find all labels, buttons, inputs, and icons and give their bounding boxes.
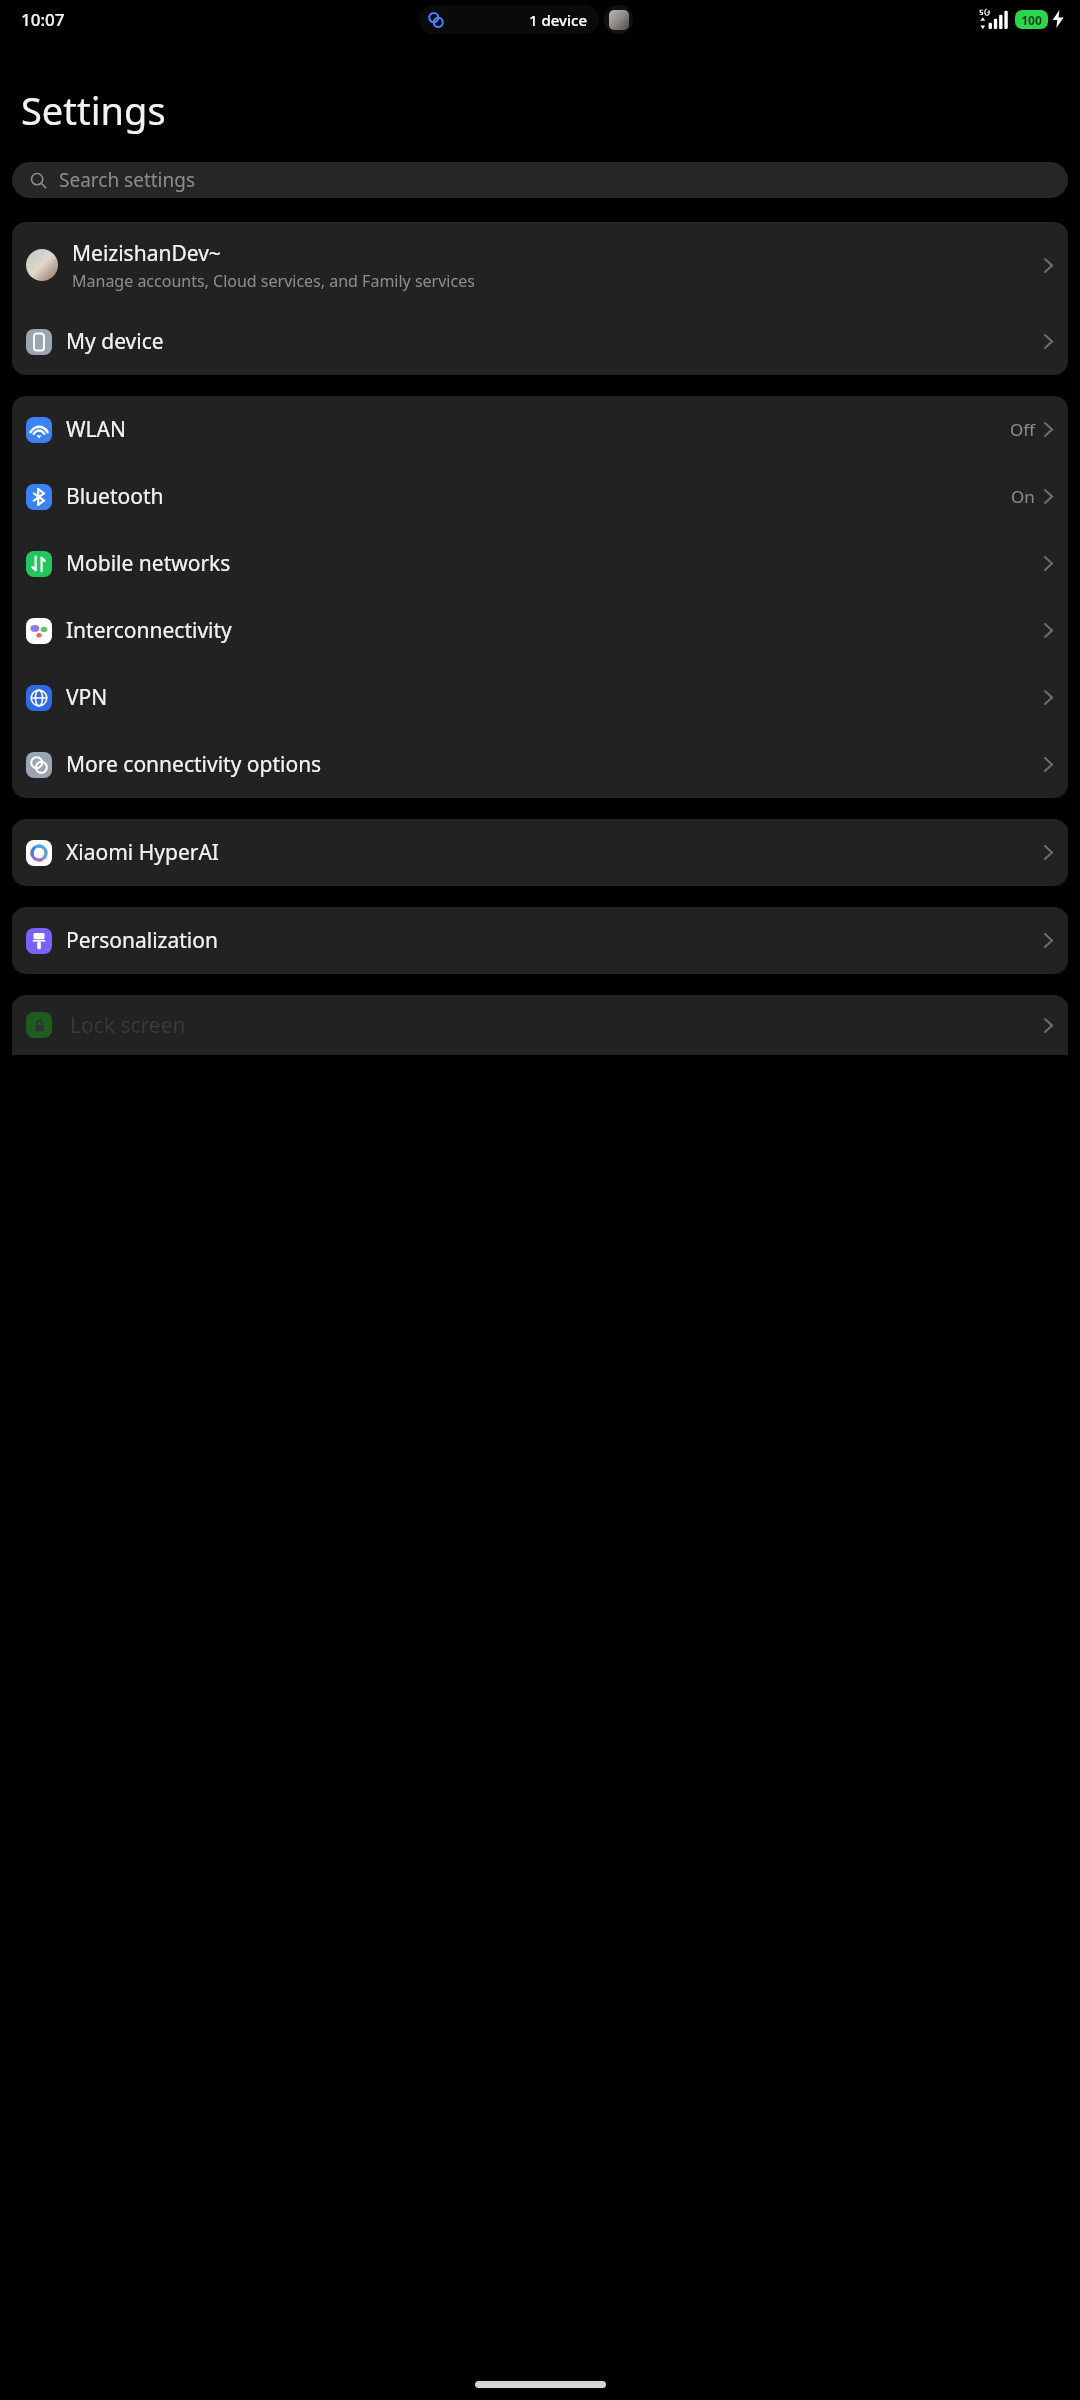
- button[interactable]: WLAN: [12, 396, 1068, 463]
- staticText: Xiaomi HyperAI: [66, 838, 219, 867]
- staticText: More connectivity options: [66, 750, 322, 779]
- staticText: Off: [1010, 418, 1035, 441]
- staticText: Interconnectivity: [66, 616, 232, 645]
- staticText: MeizishanDev~: [72, 239, 221, 268]
- staticText: Mobile networks: [66, 549, 231, 578]
- staticText: WLAN: [66, 415, 126, 444]
- staticText: Settings: [21, 84, 166, 136]
- button[interactable]: Bluetooth: [12, 463, 1068, 530]
- staticText: Manage accounts, Cloud services, and Fam…: [72, 270, 475, 292]
- staticText: Bluetooth: [66, 482, 164, 511]
- button[interactable]: Connected devices: [419, 5, 599, 34]
- button[interactable]: MeizishanDev~: [12, 222, 1068, 308]
- staticText: 1 device: [529, 10, 588, 30]
- staticText: 100: [1021, 12, 1042, 28]
- staticText: 10:07: [21, 8, 65, 31]
- button[interactable]: Personalization: [12, 907, 1068, 974]
- staticText: VPN: [66, 683, 108, 712]
- button[interactable]: Profile: [604, 5, 633, 34]
- button[interactable]: Xiaomi HyperAI: [12, 819, 1068, 886]
- staticText: Search settings: [59, 167, 196, 193]
- button[interactable]: Lock screen: [12, 995, 1068, 1055]
- button[interactable]: Interconnectivity: [12, 597, 1068, 664]
- button[interactable]: More connectivity options: [12, 731, 1068, 798]
- staticText: My device: [66, 327, 164, 356]
- staticText: Lock screen: [70, 1011, 186, 1040]
- button[interactable]: Search settings: [12, 162, 1068, 198]
- staticText: On: [1011, 485, 1035, 508]
- button[interactable]: VPN: [12, 664, 1068, 731]
- button[interactable]: Mobile networks: [12, 530, 1068, 597]
- staticText: Personalization: [66, 926, 218, 955]
- button[interactable]: My device: [12, 308, 1068, 375]
